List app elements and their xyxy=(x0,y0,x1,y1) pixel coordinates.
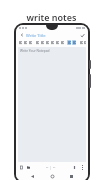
button[interactable]: Write Your Notepad xyxy=(18,47,86,162)
staticText: Write Your Notepad xyxy=(20,49,50,53)
button[interactable]: Align 1 xyxy=(67,40,71,45)
button[interactable]: Share xyxy=(72,165,77,170)
button[interactable]: Format 4 xyxy=(50,40,54,45)
button[interactable]: New note xyxy=(19,165,24,170)
button[interactable]: Folder xyxy=(26,165,31,170)
button[interactable]: Back xyxy=(19,32,25,38)
button[interactable]: Back xyxy=(29,173,36,180)
button[interactable]: List 2 xyxy=(84,40,86,45)
button[interactable]: Format 5 xyxy=(55,40,59,45)
button[interactable]: Save xyxy=(79,32,85,38)
button[interactable]: Tool 1 xyxy=(18,40,22,45)
button[interactable]: Home xyxy=(49,173,56,180)
button[interactable]: More options xyxy=(80,165,85,170)
button[interactable]: Format 6 xyxy=(60,40,64,45)
button[interactable]: Align 2 xyxy=(72,40,76,45)
staticText: write notes xyxy=(0,11,103,23)
staticText: •• | •• xyxy=(46,166,56,170)
button[interactable]: Format 3 xyxy=(45,40,49,45)
button[interactable]: Tool 3 xyxy=(28,40,32,45)
button[interactable]: Format 1 xyxy=(35,40,39,45)
button[interactable]: Recent apps xyxy=(68,173,75,180)
button[interactable]: Write Title xyxy=(26,33,79,38)
button[interactable]: List 1 xyxy=(79,40,83,45)
button[interactable]: Format 2 xyxy=(40,40,44,45)
button[interactable]: Tool 2 xyxy=(23,40,27,45)
